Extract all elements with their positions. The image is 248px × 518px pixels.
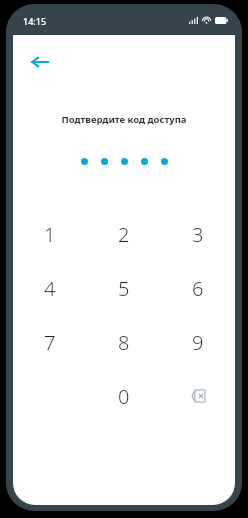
button[interactable]: 5 <box>87 261 161 315</box>
button[interactable]: Backspace <box>161 369 235 423</box>
button[interactable]: 6 <box>161 261 235 315</box>
staticText: 3 <box>192 221 204 248</box>
staticText: 9 <box>192 329 204 356</box>
staticText: 1 <box>44 221 56 248</box>
staticText: 14:15 <box>23 15 47 27</box>
button[interactable]: Back <box>23 45 57 79</box>
button[interactable]: 4 <box>13 261 87 315</box>
button[interactable]: 2 <box>87 207 161 261</box>
staticText: 8 <box>118 329 130 356</box>
button[interactable]: 7 <box>13 315 87 369</box>
staticText: 2 <box>118 221 130 248</box>
button[interactable]: 8 <box>87 315 161 369</box>
staticText: 0 <box>118 383 130 410</box>
staticText: 6 <box>192 275 204 302</box>
button[interactable]: 3 <box>161 207 235 261</box>
button[interactable]: 9 <box>161 315 235 369</box>
staticText: Подтвердите код доступа <box>13 113 235 126</box>
staticText: 7 <box>44 329 56 356</box>
button[interactable]: 0 <box>87 369 161 423</box>
staticText: 4 <box>44 275 56 302</box>
button[interactable]: 1 <box>13 207 87 261</box>
staticText: 5 <box>118 275 130 302</box>
